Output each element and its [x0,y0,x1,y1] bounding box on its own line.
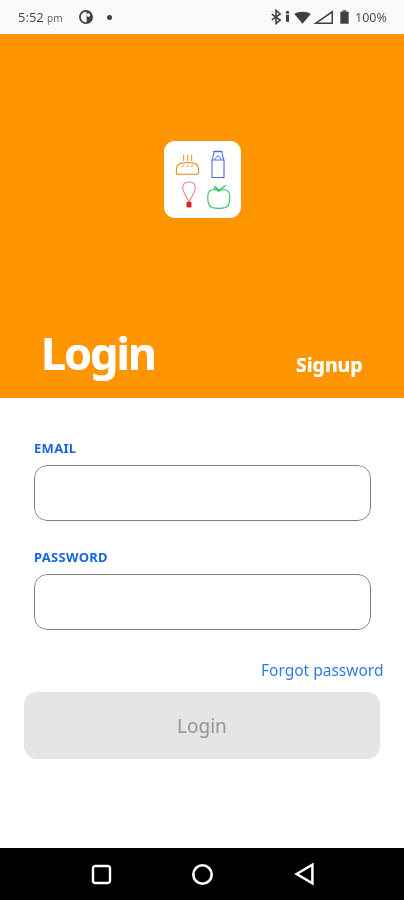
staticText: 100% [355,9,387,26]
staticText: pm [47,11,63,25]
staticText: Login [177,713,227,739]
staticText: PASSWORD [34,548,108,566]
button[interactable]: Home [178,850,226,898]
staticText: Signup [296,351,363,378]
staticText: 5:52 [18,8,44,26]
button[interactable]: Signup [288,347,371,382]
button[interactable]: Forgot password [245,657,404,682]
other: App logo [164,141,241,218]
button[interactable]: Back [280,850,328,898]
button[interactable]: Login [24,692,380,759]
button[interactable]: Login [41,322,155,383]
button[interactable]: Recent apps [77,850,126,898]
button[interactable] [34,465,371,521]
button[interactable] [34,574,371,630]
staticText: Forgot password [261,659,384,680]
staticText: EMAIL [34,439,77,457]
staticText: Login [41,322,155,383]
